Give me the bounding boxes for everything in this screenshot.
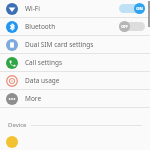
staticText: Device [8, 121, 27, 129]
staticText: Dual SIM card settings [25, 40, 145, 49]
button[interactable]: Data usage [0, 72, 150, 89]
button[interactable]: Wi-Fi [0, 0, 150, 17]
button[interactable]: Wi-Fi on [119, 3, 145, 14]
button[interactable]: Dual SIM card settings [0, 36, 150, 53]
button[interactable]: Bluetooth off [119, 21, 145, 32]
staticText: Call settings [25, 58, 145, 67]
staticText: Wi-Fi [25, 4, 119, 13]
staticText: OFF [121, 24, 128, 29]
staticText: Data usage [25, 76, 145, 85]
staticText: More [25, 94, 145, 103]
button[interactable]: Bluetooth [0, 18, 150, 35]
button[interactable]: More [0, 90, 150, 107]
button[interactable] [0, 136, 150, 150]
staticText: ON [136, 6, 143, 11]
button[interactable]: Call settings [0, 54, 150, 71]
staticText: Bluetooth [25, 22, 119, 31]
